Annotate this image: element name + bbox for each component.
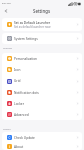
staticText: Others: [3, 127, 11, 130]
button[interactable]: Back: [0, 6, 11, 16]
staticText: Notification dots: [14, 91, 76, 95]
staticText: Icon: [14, 68, 76, 72]
staticText: Grid: [14, 79, 76, 83]
staticText: About: [14, 145, 76, 149]
staticText: Personalization: [14, 57, 76, 61]
staticText: Settings: [33, 8, 51, 14]
button[interactable]: Locker: [2, 98, 82, 109]
button[interactable]: Check Update: [2, 132, 82, 143]
button[interactable]: Personalization: [2, 53, 82, 64]
staticText: Settings: [3, 46, 13, 49]
staticText: Check Update: [14, 136, 76, 140]
staticText: Set as Default Launcher: [14, 21, 51, 25]
button[interactable]: Set as Default Launcher: [2, 18, 82, 31]
staticText: Advanced: [14, 113, 76, 117]
staticText: Locker: [14, 102, 76, 106]
button[interactable]: Notification dots: [2, 87, 82, 98]
button[interactable]: System Settings: [2, 33, 82, 44]
button[interactable]: Grid: [2, 75, 82, 87]
button[interactable]: About: [2, 143, 82, 150]
staticText: 9:41 PM: [2, 2, 11, 5]
staticText: System Settings: [14, 37, 76, 41]
staticText: Set as default launcher now: [14, 25, 51, 29]
button[interactable]: Icon: [2, 64, 82, 75]
button[interactable]: Advanced: [2, 109, 82, 120]
